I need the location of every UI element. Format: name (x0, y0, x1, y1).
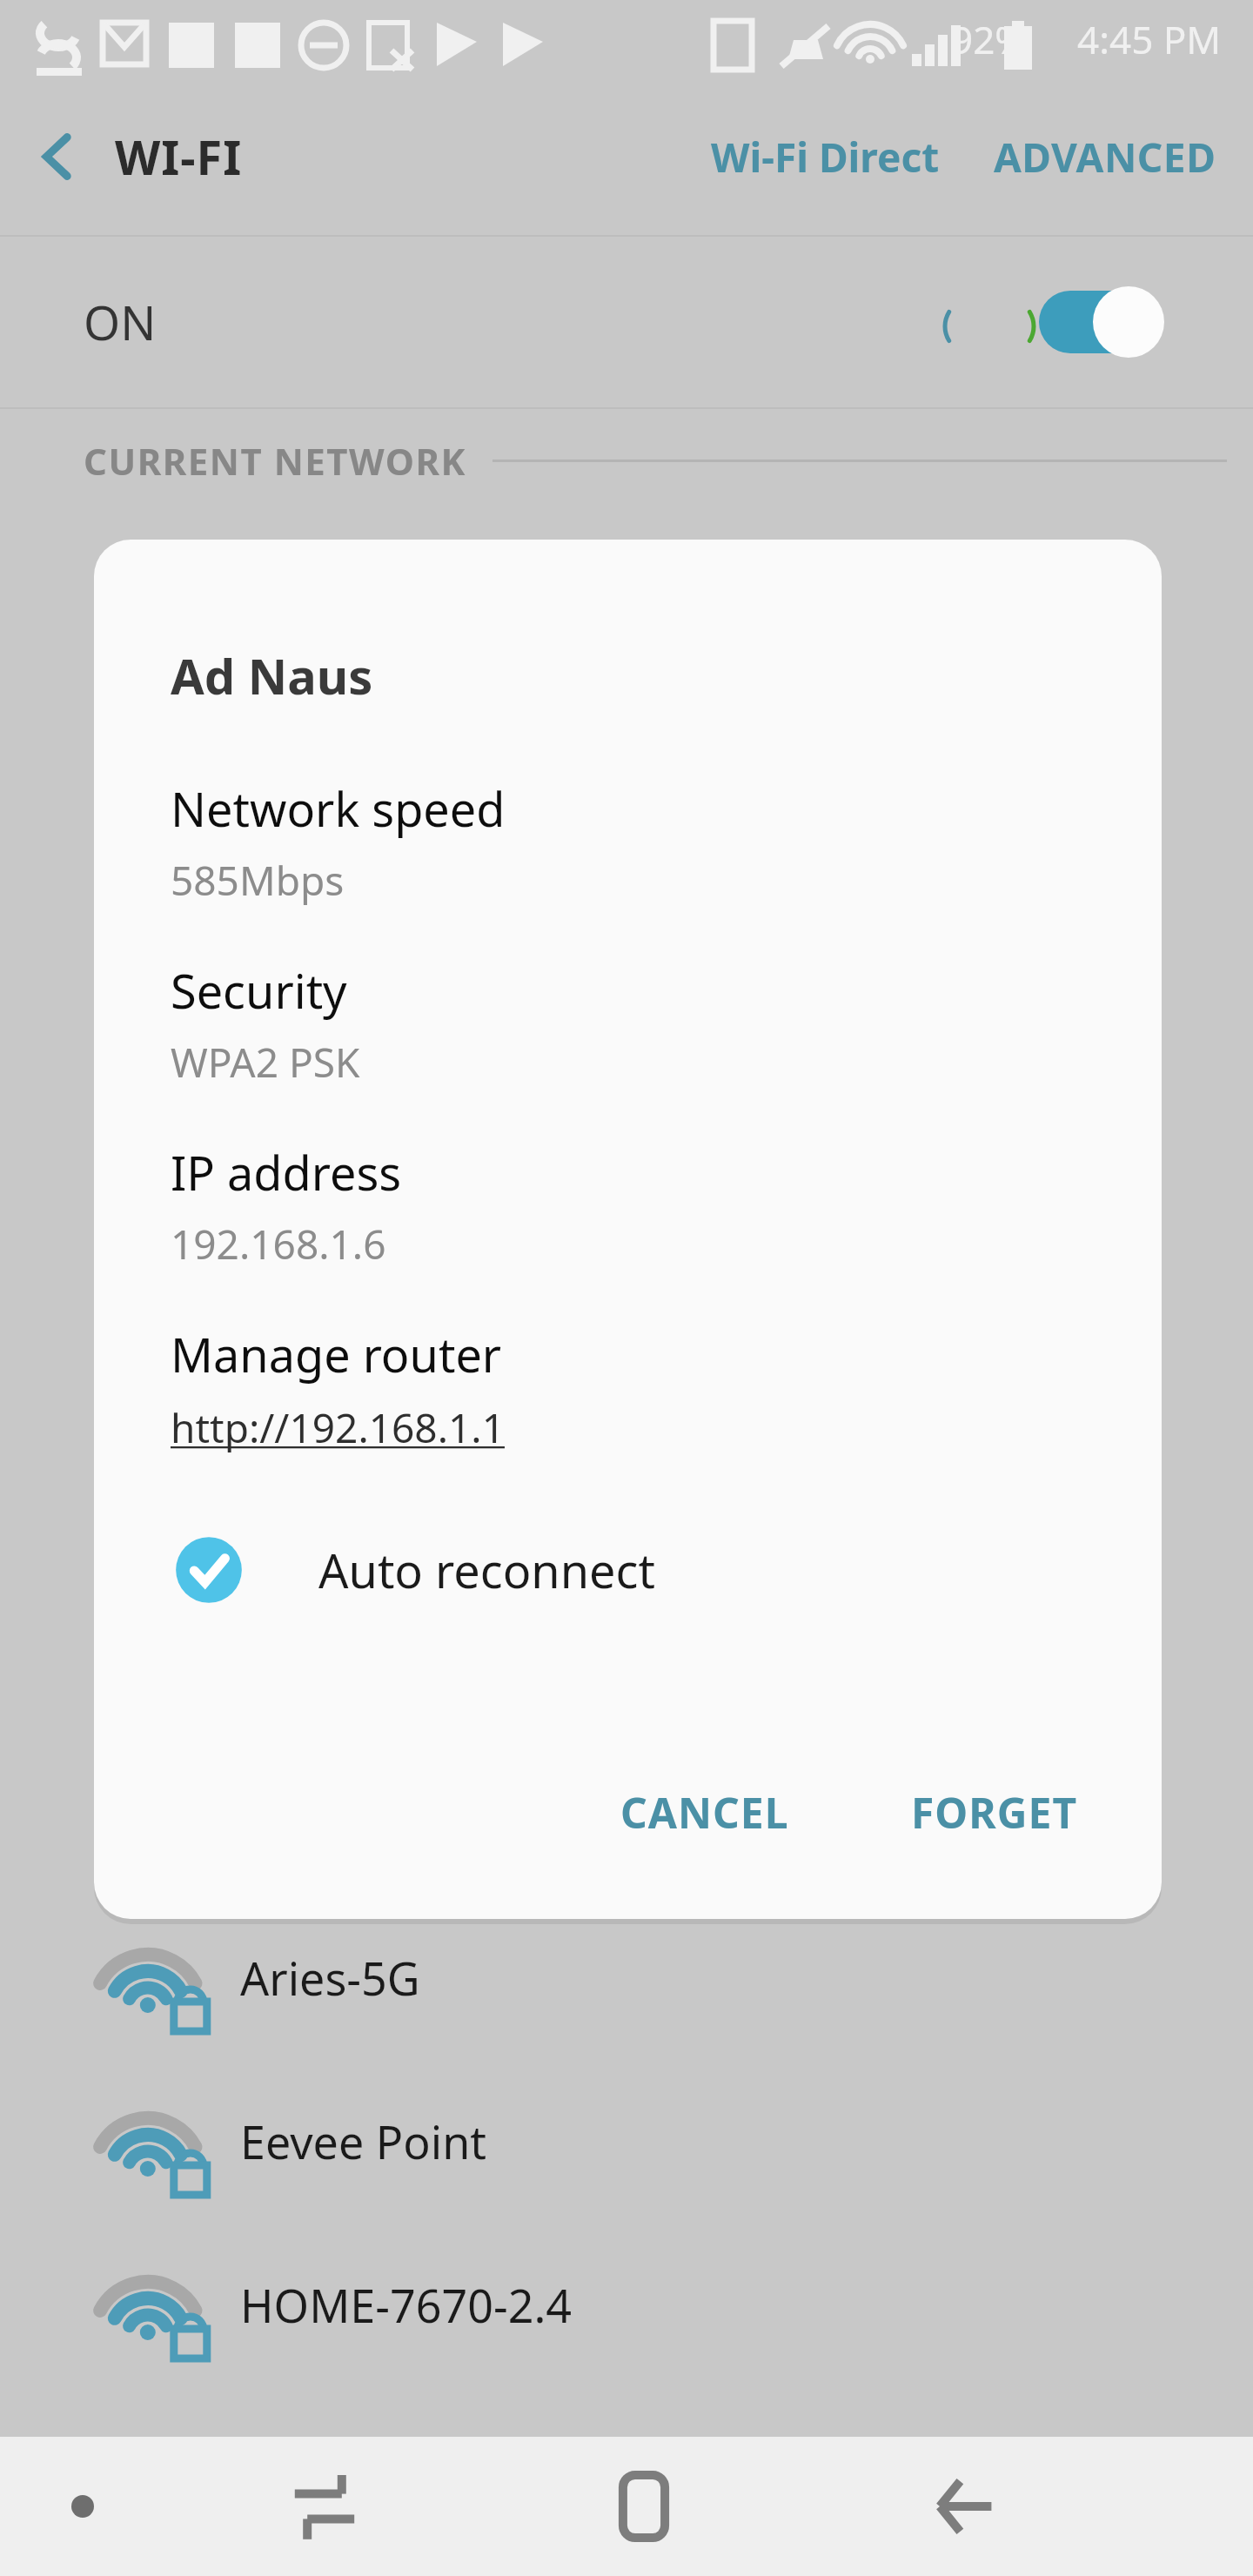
button[interactable]: Menu (0, 2437, 165, 2576)
staticText: ON (84, 290, 157, 354)
button[interactable]: Navigate up (0, 99, 115, 214)
staticText: Ad Naus (171, 642, 373, 708)
button[interactable]: http://192.168.1.1 (171, 1400, 505, 1455)
staticText: ADVANCED (994, 130, 1216, 184)
staticText: WI-FI (115, 124, 243, 189)
staticText: 92% (951, 13, 1027, 65)
button[interactable]: ON (0, 237, 1253, 407)
button[interactable]: FORGET (881, 1761, 1108, 1863)
staticText: http://192.168.1.1 (171, 1400, 505, 1455)
staticText: 4:45 PM (1077, 13, 1222, 65)
staticText: 192.168.1.6 (171, 1217, 386, 1271)
staticText: 585Mbps (171, 853, 345, 908)
button[interactable]: Eevee Point (0, 2059, 1253, 2223)
button[interactable]: CANCEL (591, 1761, 819, 1863)
button[interactable]: ADVANCED (978, 112, 1232, 202)
staticText: CURRENT NETWORK (84, 436, 466, 486)
staticText: HOME-7670-2.4 (240, 2274, 573, 2336)
staticText: WPA2 PSK (171, 1035, 360, 1090)
staticText: Network speed (171, 776, 506, 841)
staticText: CANCEL (620, 1784, 789, 1841)
button[interactable]: Back (803, 2437, 1122, 2576)
button[interactable]: Auto reconnect (94, 1518, 1162, 1622)
button[interactable]: Recent apps (165, 2437, 484, 2576)
button[interactable]: Aries-5G (0, 1895, 1253, 2059)
staticText: FORGET (911, 1784, 1078, 1841)
staticText: Wi-Fi Direct (711, 130, 940, 184)
staticText: Aries-5G (240, 1947, 420, 2009)
button[interactable]: Home (484, 2437, 803, 2576)
button[interactable]: HOME-7670-2.4 (0, 2223, 1253, 2386)
staticText: Eevee Point (240, 2110, 487, 2172)
staticText: Auto reconnect (318, 1538, 655, 1602)
staticText: Security (171, 958, 347, 1023)
button[interactable]: Wi-Fi Direct (695, 112, 955, 202)
staticText: Manage router (171, 1322, 502, 1386)
staticText: IP address (171, 1140, 402, 1204)
